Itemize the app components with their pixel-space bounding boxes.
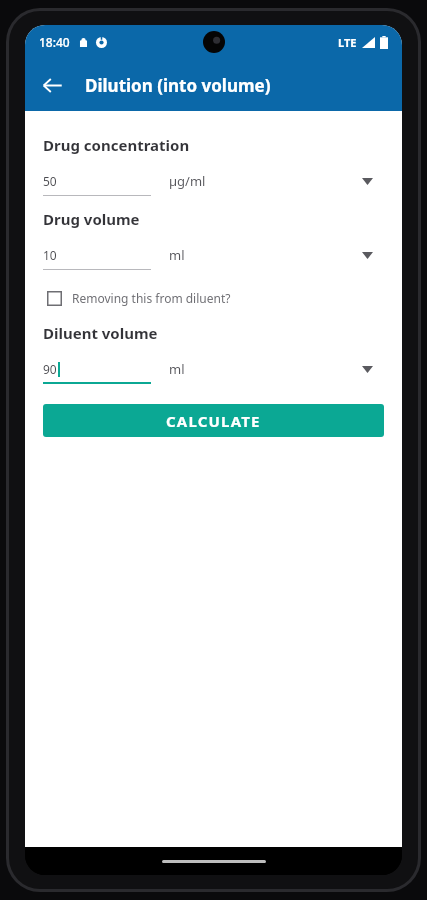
- staticText: LTE: [338, 35, 357, 50]
- staticText: ml: [169, 360, 185, 378]
- staticText: Diluent volume: [43, 323, 158, 343]
- button[interactable]: 50: [43, 166, 151, 196]
- staticText: 90: [43, 361, 57, 377]
- staticText: µg/ml: [169, 172, 206, 190]
- button[interactable]: Removing this from diluent?: [43, 284, 384, 312]
- staticText: Drug volume: [43, 209, 140, 229]
- button[interactable]: 90: [43, 354, 151, 384]
- button[interactable]: CALCULATE: [43, 404, 384, 437]
- staticText: Removing this from diluent?: [72, 290, 231, 306]
- button[interactable]: Select unit: [350, 164, 384, 198]
- staticText: Dilution (into volume): [85, 74, 271, 97]
- staticText: 18:40: [39, 34, 70, 50]
- button[interactable]: Select unit: [350, 352, 384, 386]
- staticText: ml: [169, 246, 185, 264]
- staticText: Drug concentration: [43, 135, 190, 155]
- button[interactable]: Back: [31, 64, 73, 106]
- button[interactable]: Select unit: [350, 238, 384, 272]
- button[interactable]: 10: [43, 240, 151, 270]
- staticText: 50: [43, 173, 57, 189]
- staticText: 10: [43, 247, 57, 263]
- staticText: CALCULATE: [166, 411, 261, 431]
